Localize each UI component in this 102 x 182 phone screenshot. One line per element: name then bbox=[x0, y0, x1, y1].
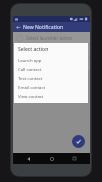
button[interactable]: Home bbox=[45, 153, 59, 164]
staticText: New Notification bbox=[23, 24, 64, 31]
button[interactable]: Navigate up bbox=[14, 23, 22, 31]
button[interactable]: Recent apps bbox=[67, 153, 81, 164]
button[interactable]: Confirm bbox=[72, 135, 85, 148]
staticText: Select launcher action bbox=[26, 61, 73, 67]
button[interactable]: Email contact bbox=[14, 82, 88, 91]
staticText: Call contact bbox=[18, 66, 42, 72]
button[interactable]: View contact bbox=[14, 91, 88, 100]
staticText: Text contact bbox=[18, 75, 43, 81]
button[interactable]: Back bbox=[22, 153, 36, 164]
button[interactable]: Select launcher action bbox=[13, 45, 90, 57]
button[interactable]: Launch app bbox=[14, 55, 88, 64]
button[interactable]: Select launcher action bbox=[13, 32, 90, 44]
staticText: Email contact bbox=[18, 84, 46, 90]
staticText: Select launcher action bbox=[26, 35, 73, 41]
button[interactable]: Text contact bbox=[14, 73, 88, 82]
staticText: Launch app bbox=[18, 57, 42, 63]
staticText: View contact bbox=[18, 93, 44, 99]
staticText: Select action bbox=[18, 46, 49, 53]
staticText: Select launcher action bbox=[26, 48, 73, 54]
button[interactable]: Select launcher action bbox=[13, 58, 90, 70]
button[interactable]: Call contact bbox=[14, 64, 88, 73]
